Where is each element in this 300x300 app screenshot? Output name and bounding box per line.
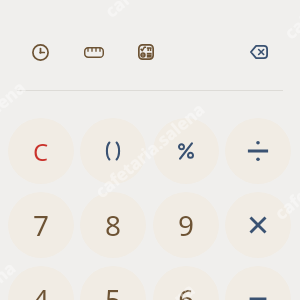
staticText: C: [33, 135, 49, 168]
button[interactable]: 8: [80, 192, 146, 258]
button[interactable]: Scientific functions: [130, 36, 162, 68]
staticText: 8: [105, 206, 122, 244]
button[interactable]: 5: [80, 266, 146, 300]
staticText: 9: [178, 206, 195, 244]
button[interactable]: [80, 118, 146, 184]
button[interactable]: 4: [8, 266, 74, 300]
button[interactable]: [225, 118, 291, 184]
button[interactable]: 7: [8, 192, 74, 258]
staticText: 5: [105, 280, 122, 300]
button[interactable]: [225, 192, 291, 258]
button[interactable]: [225, 266, 291, 300]
staticText: 7: [33, 206, 50, 244]
button[interactable]: C: [8, 118, 74, 184]
button[interactable]: 9: [153, 192, 219, 258]
staticText: 4: [33, 280, 50, 300]
button[interactable]: Backspace: [243, 36, 275, 68]
button[interactable]: [153, 118, 219, 184]
staticText: 6: [178, 280, 195, 300]
button[interactable]: Unit converter: [78, 36, 110, 68]
button[interactable]: 6: [153, 266, 219, 300]
button[interactable]: History: [24, 36, 56, 68]
